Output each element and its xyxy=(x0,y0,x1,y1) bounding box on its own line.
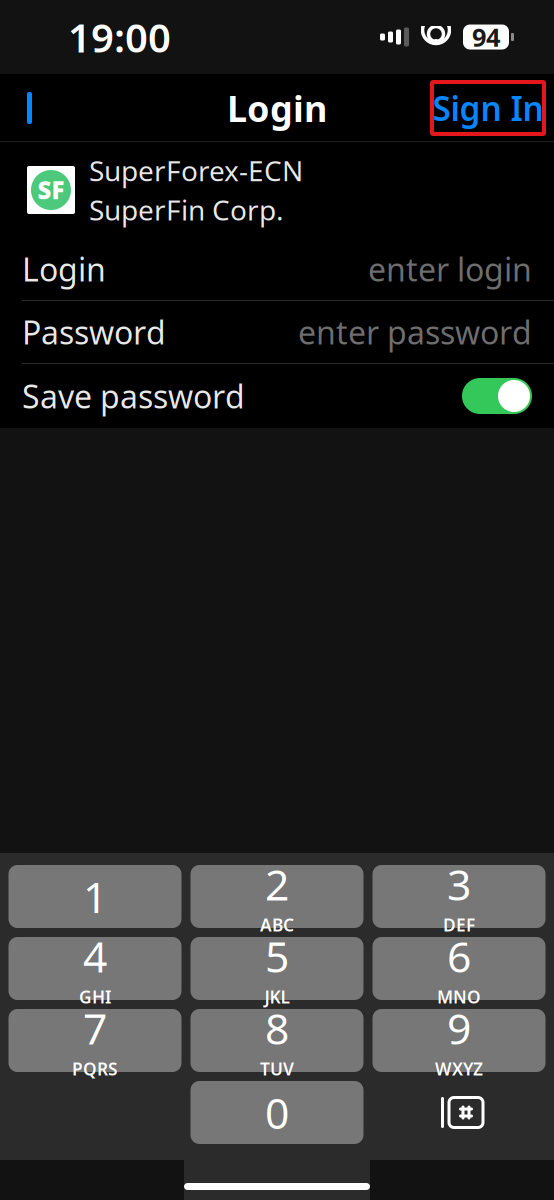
staticText: 6 xyxy=(447,928,471,984)
button[interactable]: 5 xyxy=(190,937,363,1000)
button[interactable]: Back xyxy=(4,76,60,140)
button[interactable]: SF xyxy=(0,142,554,238)
staticText: MNO xyxy=(437,985,481,1008)
staticText: 3 xyxy=(447,856,471,912)
button[interactable]: Password xyxy=(0,301,554,363)
button[interactable]: 2 xyxy=(190,865,363,928)
staticText: Save password xyxy=(22,375,245,417)
staticText: 19:00 xyxy=(68,10,171,63)
staticText: 2 xyxy=(265,856,289,912)
staticText: PQRS xyxy=(72,1057,118,1080)
staticText: 8 xyxy=(265,1000,289,1056)
staticText: SF xyxy=(37,174,64,206)
staticText: Password xyxy=(22,311,166,353)
staticText: Sign In xyxy=(432,86,543,130)
staticText: 1 xyxy=(83,868,107,925)
button[interactable]: 3 xyxy=(372,865,545,928)
staticText: 9 xyxy=(447,1000,471,1056)
staticText: SuperForex-ECN xyxy=(89,152,303,189)
button[interactable]: Sign In xyxy=(432,82,544,134)
staticText: ABC xyxy=(260,913,294,936)
staticText: WXYZ xyxy=(435,1057,483,1080)
staticText: DEF xyxy=(443,913,475,936)
staticText: Login xyxy=(22,248,106,290)
staticText: JKL xyxy=(264,985,289,1008)
staticText: 7 xyxy=(83,1000,107,1056)
staticText: enter password xyxy=(298,311,532,353)
staticText: 94 xyxy=(472,20,500,54)
button[interactable]: 6 xyxy=(372,937,545,1000)
button[interactable]: 1 xyxy=(8,865,181,928)
staticText: 5 xyxy=(265,928,289,984)
button[interactable]: 8 xyxy=(190,1009,363,1072)
staticText: SuperFin Corp. xyxy=(89,191,284,228)
button[interactable]: Save password xyxy=(460,374,534,418)
button[interactable]: 9 xyxy=(372,1009,545,1072)
staticText: GHI xyxy=(79,985,111,1008)
button[interactable]: Delete xyxy=(372,1081,545,1144)
staticText: Login xyxy=(227,84,327,132)
staticText: 4 xyxy=(83,928,107,984)
button[interactable]: 0 xyxy=(190,1081,363,1144)
button[interactable]: 4 xyxy=(8,937,181,1000)
button[interactable]: Login xyxy=(0,238,554,300)
staticText: TUV xyxy=(260,1057,294,1080)
staticText: 0 xyxy=(265,1084,289,1141)
button[interactable]: 7 xyxy=(8,1009,181,1072)
staticText: enter login xyxy=(368,248,532,290)
